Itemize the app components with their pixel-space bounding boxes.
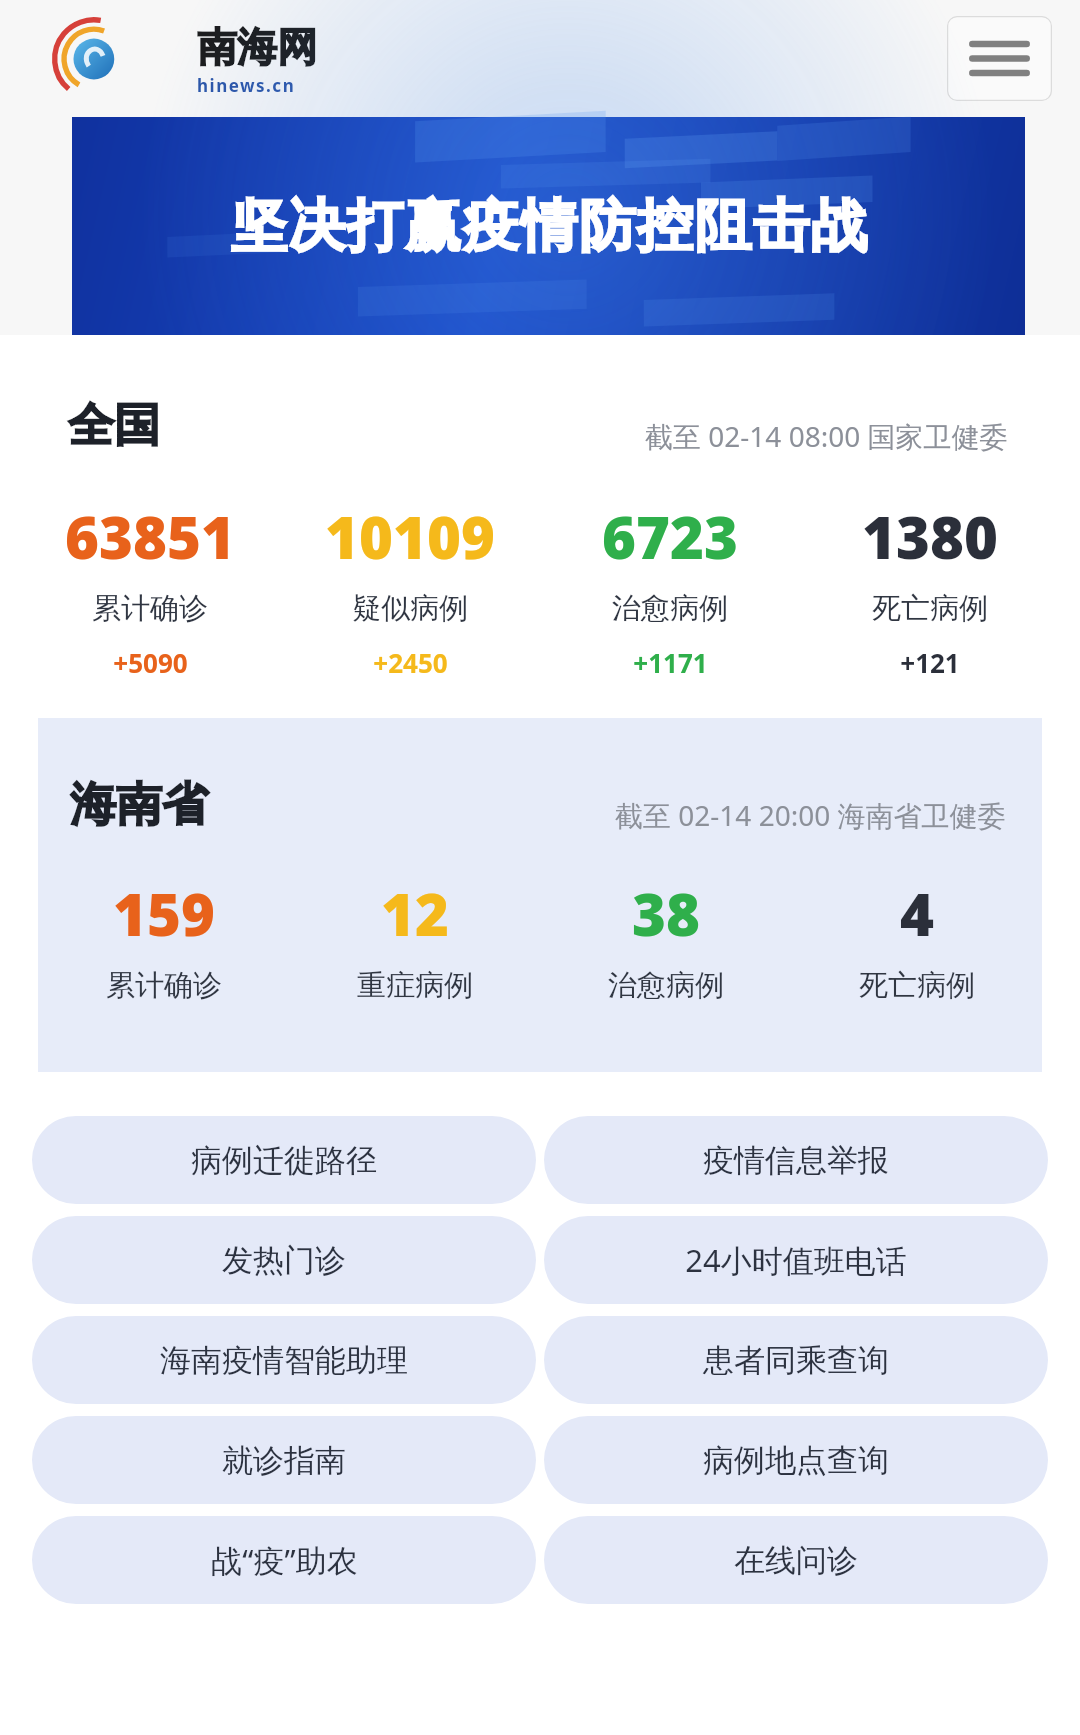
button[interactable]: 患者同乘查询 — [544, 1316, 1048, 1404]
staticText: 南海网 — [197, 22, 317, 72]
button[interactable]: 发热门诊 — [32, 1216, 536, 1304]
staticText: 6723 — [602, 497, 738, 576]
staticText: 就诊指南 — [222, 1441, 346, 1480]
staticText: hinews.cn — [197, 74, 296, 97]
staticText: 全国 — [68, 397, 160, 455]
staticText: 患者同乘查询 — [703, 1341, 889, 1380]
staticText: 病例地点查询 — [703, 1441, 889, 1480]
button[interactable]: Menu — [947, 16, 1052, 101]
button[interactable]: 24小时值班电话 — [544, 1216, 1048, 1304]
button[interactable]: 在线问诊 — [544, 1516, 1048, 1604]
staticText: 159 — [113, 874, 215, 953]
staticText: 1380 — [862, 497, 998, 576]
staticText: 海南省 — [70, 776, 208, 834]
button[interactable]: 病例迁徙路径 — [32, 1116, 536, 1204]
staticText: 坚决打赢疫情防控阻击战 — [230, 191, 868, 262]
staticText: 累计确诊 — [106, 967, 222, 1004]
staticText: 38 — [632, 874, 700, 953]
staticText: 海南疫情智能助理 — [160, 1341, 408, 1380]
staticText: 24小时值班电话 — [685, 1239, 907, 1281]
staticText: 病例迁徙路径 — [191, 1141, 377, 1180]
staticText: +5090 — [113, 645, 188, 680]
staticText: 死亡病例 — [859, 967, 975, 1004]
button[interactable]: 病例地点查询 — [544, 1416, 1048, 1504]
staticText: 4 — [900, 874, 934, 953]
staticText: +1171 — [633, 645, 708, 680]
staticText: 截至 02-14 08:00 国家卫健委 — [645, 417, 1008, 455]
staticText: 累计确诊 — [92, 590, 208, 627]
staticText: 截至 02-14 20:00 海南省卫健委 — [615, 796, 1006, 834]
staticText: 发热门诊 — [222, 1241, 346, 1280]
staticText: 疫情信息举报 — [703, 1141, 889, 1180]
button[interactable]: 疫情信息举报 — [544, 1116, 1048, 1204]
staticText: 在线问诊 — [734, 1541, 858, 1580]
staticText: +2450 — [373, 645, 448, 680]
staticText: 63851 — [65, 497, 235, 576]
button[interactable]: 战“疫”助农 — [32, 1516, 536, 1604]
staticText: 战“疫”助农 — [211, 1539, 358, 1581]
staticText: +121 — [900, 645, 960, 680]
staticText: 12 — [381, 874, 449, 953]
button[interactable]: 海南疫情智能助理 — [32, 1316, 536, 1404]
button[interactable]: 就诊指南 — [32, 1416, 536, 1504]
staticText: 10109 — [325, 497, 495, 576]
staticText: 治愈病例 — [608, 967, 724, 1004]
staticText: 治愈病例 — [612, 590, 728, 627]
staticText: 重症病例 — [357, 967, 473, 1004]
staticText: 死亡病例 — [872, 590, 988, 627]
staticText: 疑似病例 — [352, 590, 468, 627]
